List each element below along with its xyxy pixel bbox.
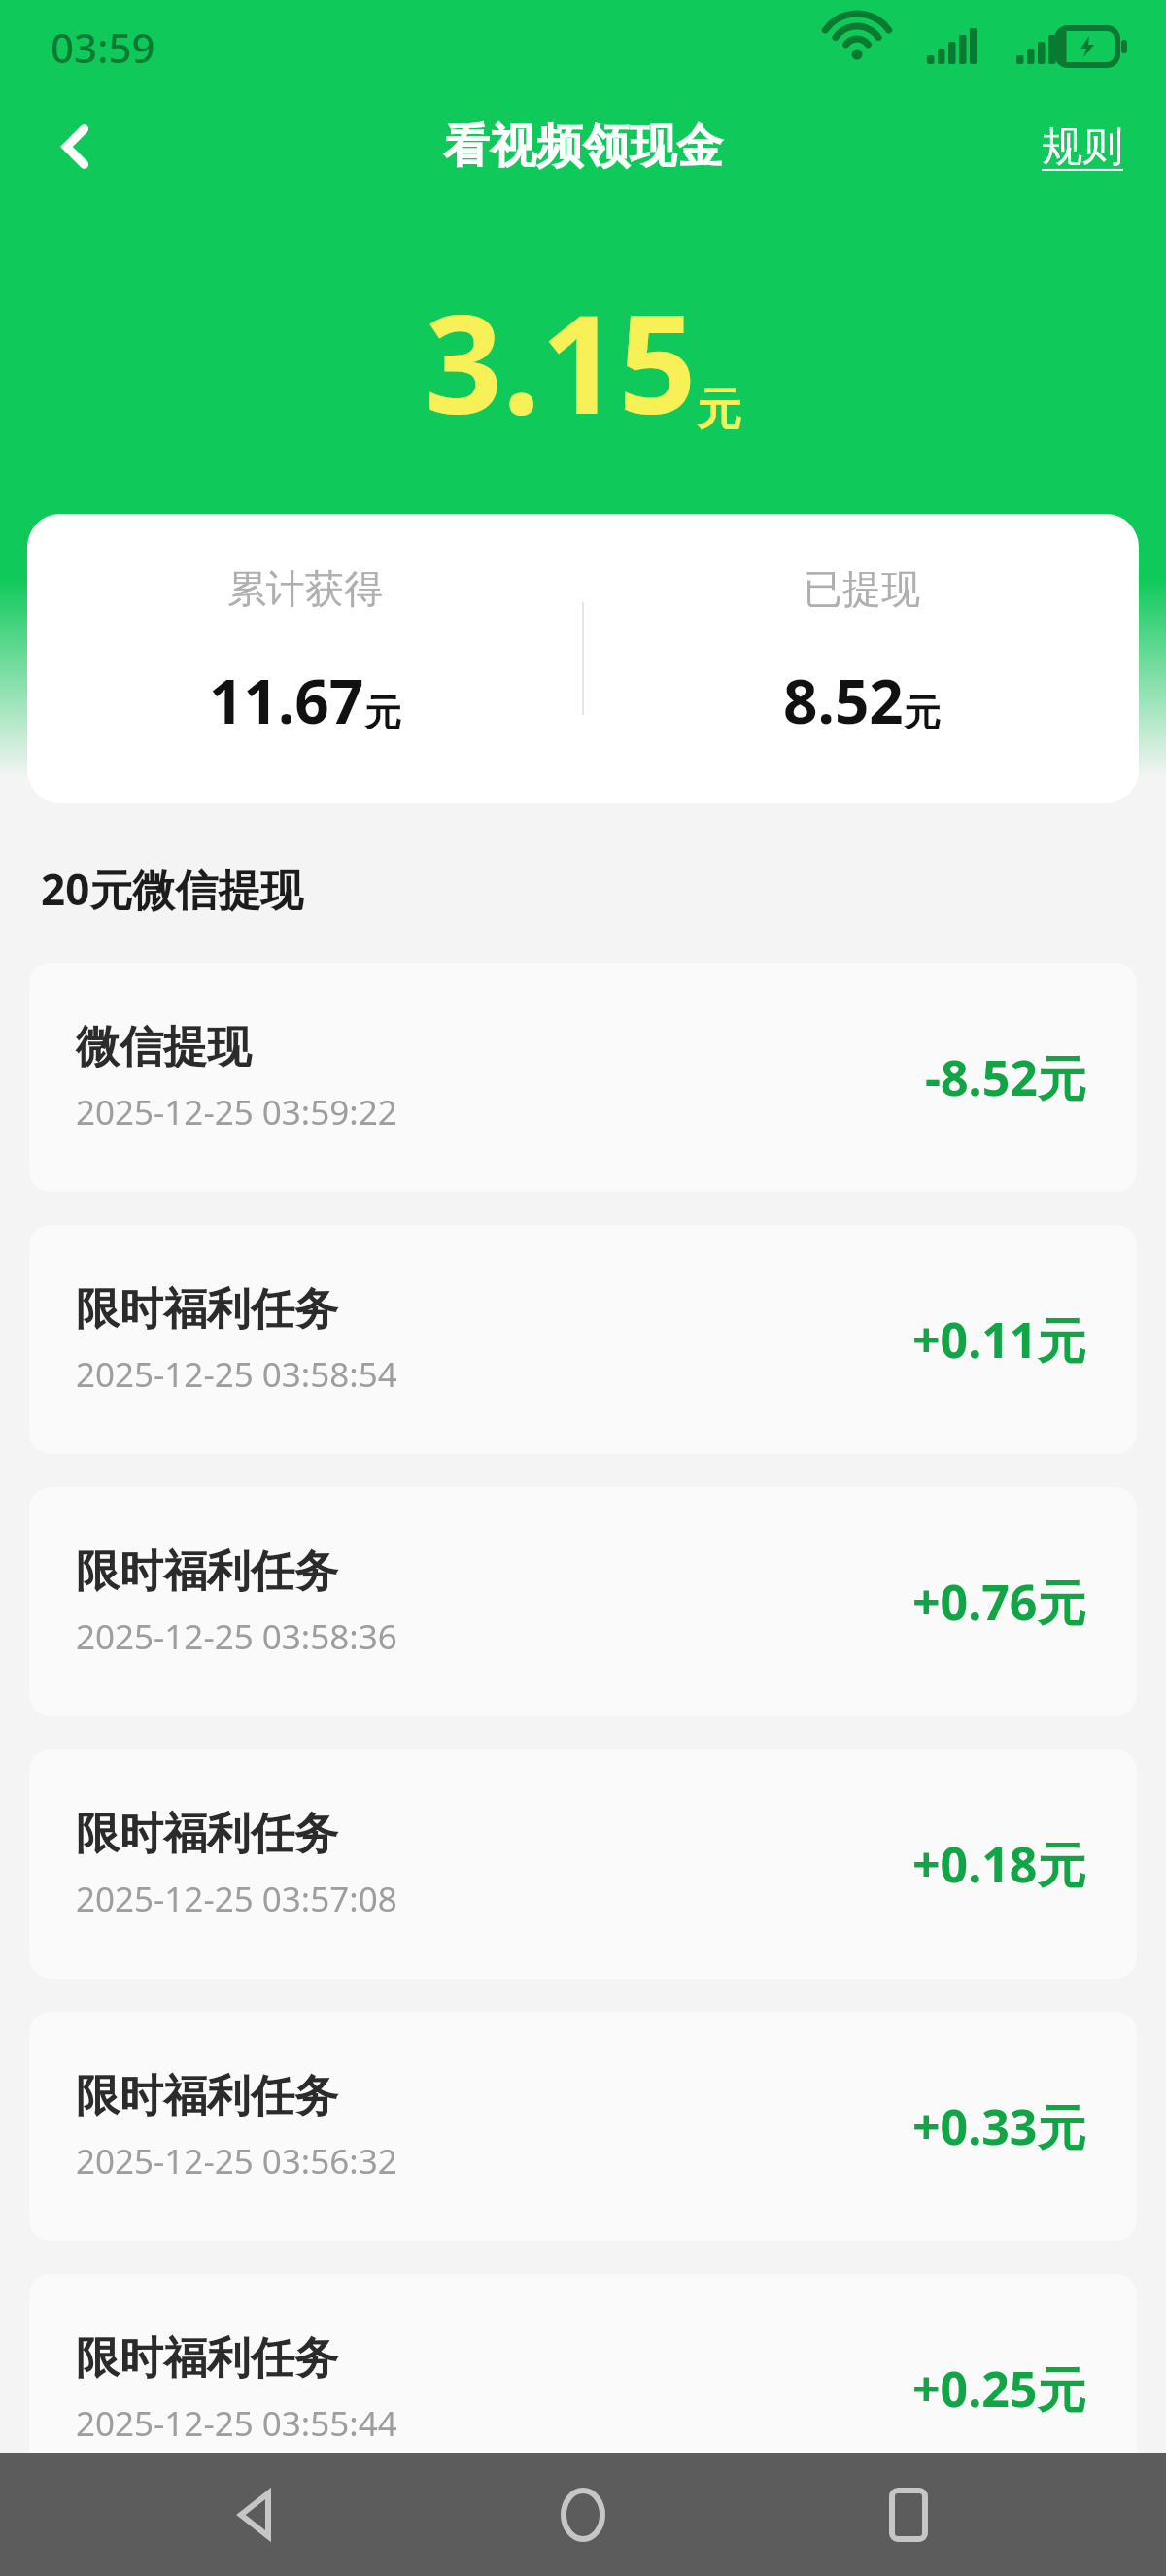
staticText: 2025-12-25 03:59:22 — [76, 1089, 397, 1135]
staticText: +0.18元 — [912, 1831, 1086, 1897]
staticText: 微信提现 — [76, 1020, 251, 1075]
staticText: 限时福利任务 — [76, 2069, 338, 2124]
staticText: 2025-12-25 03:58:54 — [76, 1351, 397, 1398]
staticText: 2025-12-25 03:58:36 — [76, 1613, 397, 1660]
staticText: 元 — [697, 382, 741, 438]
button[interactable]: 规则 — [1032, 110, 1133, 185]
staticText: +0.76元 — [912, 1569, 1086, 1635]
button[interactable]: 限时福利任务 — [29, 2012, 1137, 2241]
button[interactable]: Back — [29, 100, 122, 193]
staticText: 限时福利任务 — [76, 1282, 338, 1338]
staticText: 8.52 — [783, 660, 904, 741]
button[interactable]: Back — [189, 2453, 326, 2576]
staticText: -8.52元 — [925, 1044, 1086, 1110]
staticText: 限时福利任务 — [76, 2331, 338, 2387]
staticText: 看视频领现金 — [443, 118, 723, 176]
button[interactable]: 限时福利任务 — [29, 1487, 1137, 1716]
button[interactable]: 限时福利任务 — [29, 1225, 1137, 1454]
staticText: +0.11元 — [912, 1306, 1086, 1373]
staticText: 已提现 — [804, 564, 920, 613]
button[interactable]: 限时福利任务 — [29, 1749, 1137, 1979]
staticText: 累计获得 — [227, 564, 383, 613]
button[interactable]: 微信提现 — [29, 963, 1137, 1192]
staticText: +0.33元 — [912, 2093, 1086, 2159]
staticText: 2025-12-25 03:56:32 — [76, 2138, 397, 2185]
button[interactable]: 限时福利任务 — [29, 2274, 1137, 2503]
staticText: 3.15 — [425, 268, 697, 454]
staticText: 2025-12-25 03:55:44 — [76, 2400, 397, 2447]
staticText: 规则 — [1042, 121, 1123, 173]
staticText: 03:59 — [51, 19, 155, 75]
staticText: 20元微信提现 — [41, 860, 304, 918]
button[interactable]: 累计获得 — [27, 514, 1139, 803]
staticText: 11.67 — [209, 660, 364, 741]
staticText: 元 — [364, 690, 401, 736]
staticText: 限时福利任务 — [76, 1544, 338, 1600]
staticText: 限时福利任务 — [76, 1807, 338, 1862]
staticText: 元 — [904, 690, 941, 736]
button[interactable]: Recents — [840, 2453, 977, 2576]
button[interactable]: Home — [515, 2453, 651, 2576]
staticText: 2025-12-25 03:57:08 — [76, 1876, 397, 1922]
staticText: +0.25元 — [912, 2356, 1086, 2422]
